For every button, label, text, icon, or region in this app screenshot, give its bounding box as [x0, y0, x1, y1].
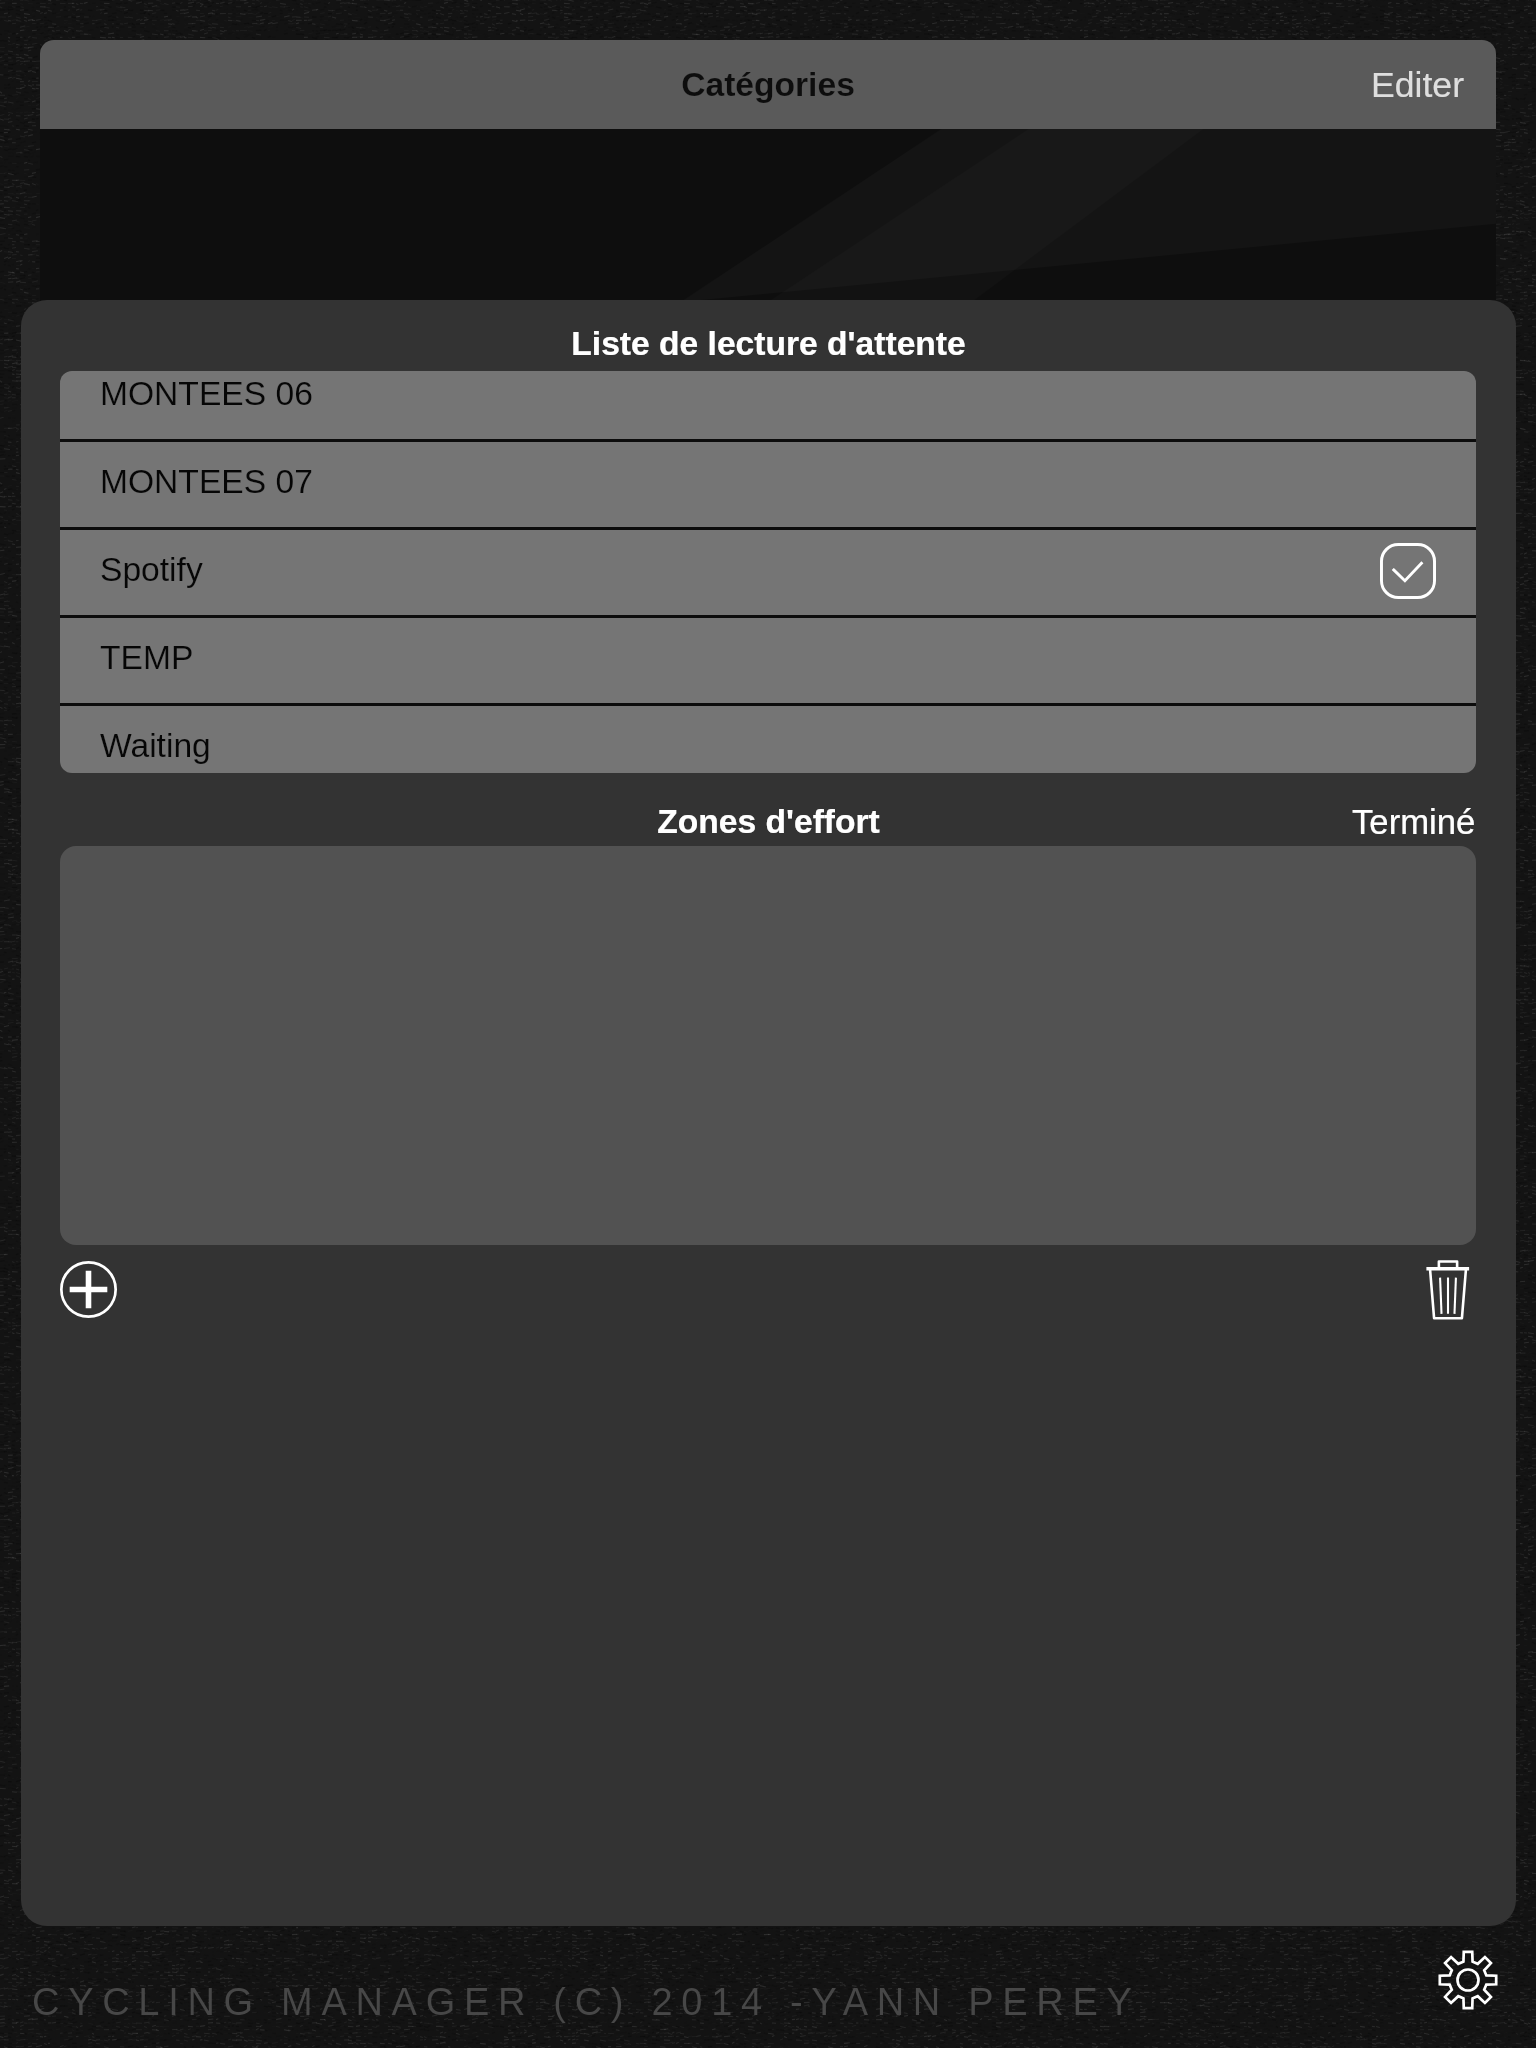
- staticText: CYCLING MANAGER (C) 2014 -YANN PEREY: [32, 1981, 1141, 2023]
- button[interactable]: MONTEES 07: [60, 442, 1476, 530]
- button[interactable]: Editer: [1371, 65, 1464, 105]
- staticText: TEMP: [100, 639, 194, 677]
- button[interactable]: Catégories: [40, 40, 1496, 129]
- button[interactable]: Settings: [1438, 1950, 1498, 2010]
- staticText: MONTEES 07: [100, 463, 313, 501]
- staticText: Editer: [1371, 65, 1464, 105]
- staticText: Waiting: [100, 727, 211, 765]
- button[interactable]: MONTEES 06: [60, 371, 1476, 442]
- staticText: Zones d'effort: [21, 803, 1516, 841]
- button[interactable]: Delete: [1424, 1259, 1472, 1321]
- staticText: Liste de lecture d'attente: [21, 325, 1516, 363]
- staticText: Terminé: [1352, 803, 1476, 842]
- button[interactable]: Waiting: [60, 706, 1476, 773]
- staticText: Spotify: [100, 551, 203, 589]
- button[interactable]: TEMP: [60, 618, 1476, 706]
- staticText: Catégories: [40, 66, 1496, 104]
- button[interactable]: Add zone: [60, 1261, 117, 1318]
- staticText: MONTEES 06: [100, 375, 313, 413]
- button[interactable]: Terminé: [1352, 803, 1476, 842]
- button[interactable]: Spotify: [60, 530, 1476, 618]
